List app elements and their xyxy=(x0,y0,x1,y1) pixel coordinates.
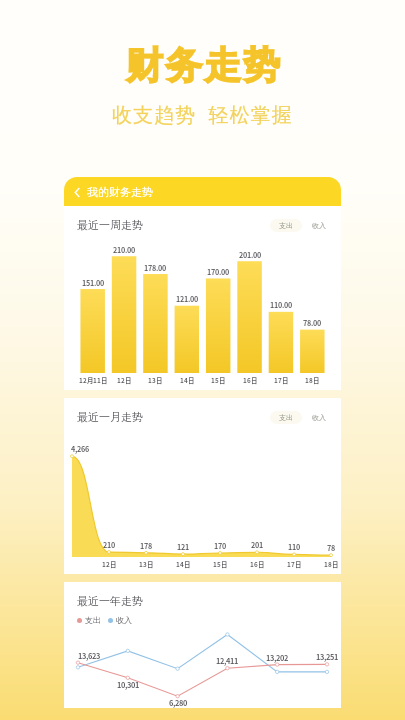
button[interactable]: 收入 xyxy=(312,413,326,422)
button[interactable]: Back xyxy=(64,177,341,206)
staticText: 支出 xyxy=(279,413,293,422)
staticText: 我的财务走势 xyxy=(87,185,153,199)
button[interactable]: 收入 xyxy=(312,221,326,230)
button[interactable]: 支出 xyxy=(279,221,293,230)
button[interactable]: 最近一月走势 xyxy=(64,398,341,574)
staticText: 支出 xyxy=(279,221,293,230)
button[interactable]: 最近一周走势 xyxy=(64,206,341,390)
staticText: 收入 xyxy=(312,413,326,422)
staticText: 支出 xyxy=(85,615,101,625)
staticText: 收入 xyxy=(116,615,132,625)
staticText: 收支趋势 轻松掌握 xyxy=(112,101,293,128)
staticText: 最近一年走势 xyxy=(77,594,143,608)
button[interactable]: 支出 xyxy=(279,413,293,422)
staticText: 收入 xyxy=(312,221,326,230)
staticText: 最近一月走势 xyxy=(77,410,143,424)
button[interactable]: 最近一年走势 xyxy=(64,582,341,708)
button[interactable]: Back xyxy=(71,186,84,199)
staticText: 财务走势 xyxy=(125,42,281,89)
staticText: 最近一周走势 xyxy=(77,218,143,232)
